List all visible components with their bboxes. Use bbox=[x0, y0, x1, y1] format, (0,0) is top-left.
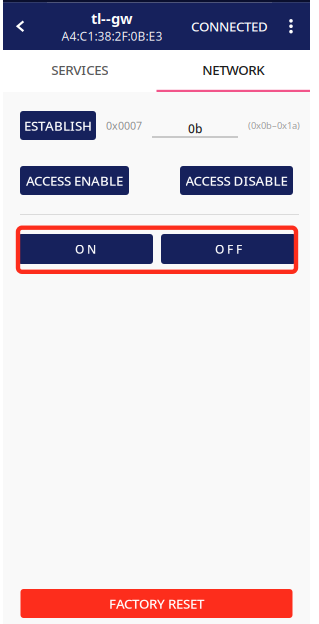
staticText: 0x0007 bbox=[106, 118, 142, 133]
button[interactable]: FACTORY RESET bbox=[20, 589, 292, 618]
staticText: ACCESS ENABLE bbox=[26, 172, 123, 189]
staticText: (0x0b–0x1a) bbox=[248, 119, 300, 132]
button[interactable]: SERVICES bbox=[3, 50, 156, 92]
button[interactable]: ACCESS DISABLE bbox=[180, 166, 293, 195]
staticText: tl--gw bbox=[91, 8, 133, 28]
button[interactable]: O F F bbox=[161, 234, 296, 264]
staticText: O N bbox=[75, 241, 96, 257]
button[interactable]: More options bbox=[272, 2, 310, 50]
staticText: A4:C1:38:2F:0B:E3 bbox=[61, 28, 162, 44]
staticText: 0b bbox=[188, 121, 202, 136]
staticText: CONNECTED bbox=[191, 17, 268, 35]
staticText: NETWORK bbox=[202, 61, 264, 79]
button[interactable]: ACCESS ENABLE bbox=[20, 166, 129, 195]
staticText: ACCESS DISABLE bbox=[185, 172, 287, 189]
staticText: ESTABLISH bbox=[24, 117, 92, 134]
staticText: FACTORY RESET bbox=[109, 595, 204, 612]
button[interactable]: Back bbox=[3, 2, 47, 50]
button[interactable]: NETWORK bbox=[156, 50, 310, 92]
button[interactable]: ESTABLISH bbox=[20, 111, 96, 140]
staticText: O F F bbox=[215, 241, 242, 257]
button[interactable]: O N bbox=[18, 234, 153, 264]
staticText: SERVICES bbox=[51, 61, 108, 79]
